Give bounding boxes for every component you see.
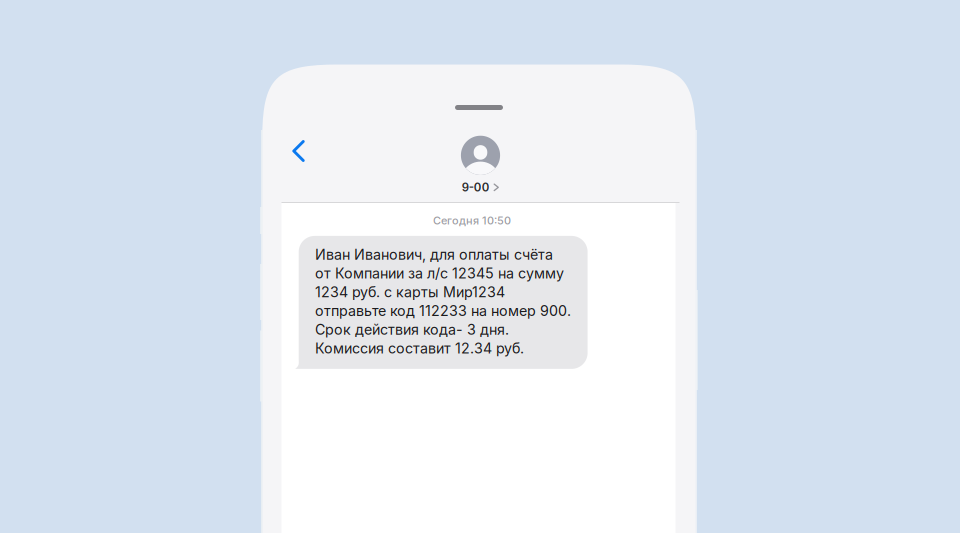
button[interactable]: 9-00 — [461, 136, 500, 194]
staticText: Иван Иванович, для оплаты счёта от Компа… — [315, 246, 571, 357]
staticText: Сегодня 10:50 — [433, 214, 511, 227]
button[interactable]: Back — [280, 133, 316, 169]
staticText: 9-00 — [462, 180, 490, 194]
